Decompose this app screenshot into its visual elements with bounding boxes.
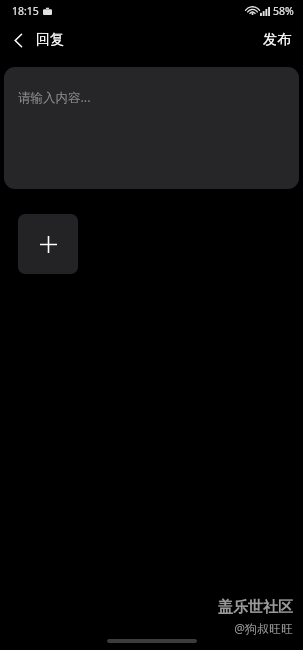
staticText: 58% [273,4,294,18]
staticText: 发布 [263,31,291,49]
button[interactable]: Back [0,27,72,53]
other: Back [9,31,27,49]
staticText: 回复 [36,31,64,49]
staticText: @狗叔旺旺 [234,620,293,636]
staticText: 18:15 [12,4,39,18]
button[interactable]: 请输入内容... [4,67,299,189]
staticText: 盖乐世社区 [218,598,293,617]
staticText: 请输入内容... [18,89,91,106]
button[interactable]: 发布 [251,25,303,55]
button[interactable]: Add image [18,214,78,274]
